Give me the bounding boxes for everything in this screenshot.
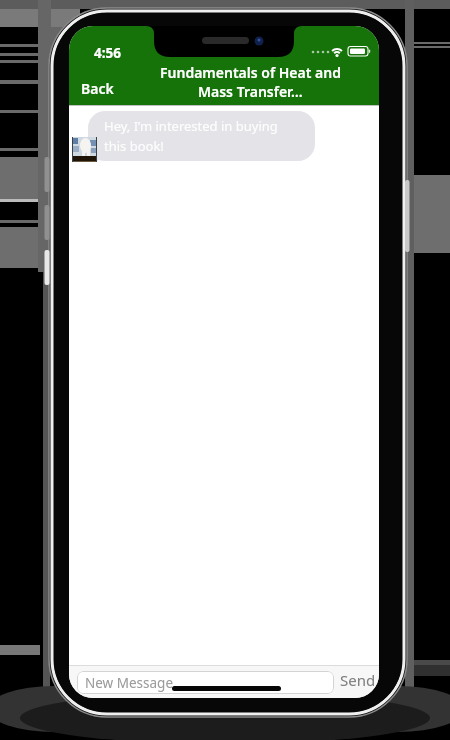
button[interactable]: New Message [77, 671, 334, 694]
button[interactable]: Back [81, 79, 114, 98]
staticText: Back [81, 79, 114, 98]
staticText: 4:56 [94, 44, 121, 62]
staticText: Mass Transfer… [198, 82, 303, 101]
button[interactable]: Send [340, 670, 376, 690]
staticText: Send [340, 670, 376, 690]
staticText: New Message [85, 674, 174, 692]
staticText: Hey, I’m interested in buying this book! [104, 117, 278, 155]
staticText: Fundamentals of Heat and [160, 63, 341, 82]
